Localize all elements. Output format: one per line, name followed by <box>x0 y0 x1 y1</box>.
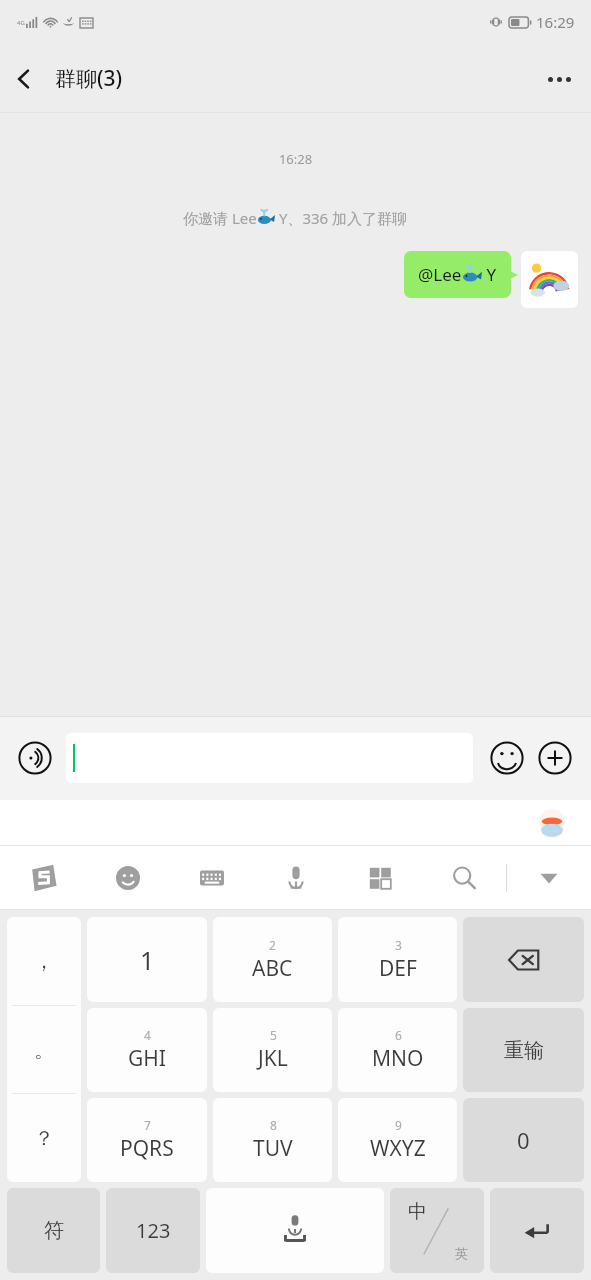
button[interactable]: 6 <box>338 1008 457 1092</box>
button[interactable]: Sogou input <box>0 846 85 910</box>
button[interactable]: Space <box>206 1188 384 1273</box>
button[interactable]: 1 <box>87 917 207 1002</box>
button[interactable]: @Lee <box>404 251 511 298</box>
staticText: 6 <box>395 1027 402 1043</box>
staticText: 4 <box>144 1027 151 1043</box>
staticText: WXYZ <box>370 1134 426 1163</box>
button[interactable]: ？ <box>7 1094 81 1182</box>
button[interactable]: ， <box>7 917 81 1006</box>
staticText: 中 <box>408 1200 427 1224</box>
button[interactable]: Back <box>0 55 48 103</box>
button[interactable]: Voice <box>254 846 338 910</box>
staticText: GHI <box>128 1044 166 1073</box>
button[interactable]: 4 <box>87 1008 207 1092</box>
staticText: 0 <box>517 1125 530 1155</box>
button[interactable]: Emoticons <box>85 846 170 910</box>
button[interactable]: Avatar <box>521 251 578 308</box>
button[interactable]: Collapse keyboard <box>507 846 591 910</box>
staticText: ， <box>34 949 54 974</box>
button[interactable]: 7 <box>87 1098 207 1182</box>
button[interactable]: Re-enter <box>463 1008 584 1092</box>
button[interactable]: Backspace <box>463 917 584 1002</box>
staticText: 5 <box>270 1027 277 1043</box>
staticText: 3 <box>395 937 402 953</box>
button[interactable]: Search <box>422 846 506 910</box>
staticText: 英 <box>455 1245 468 1261</box>
button[interactable] <box>66 733 473 783</box>
button[interactable]: Chinese English toggle <box>390 1188 484 1273</box>
button[interactable]: 8 <box>213 1098 332 1182</box>
button[interactable]: Voice input <box>14 737 56 779</box>
staticText: JKL <box>258 1044 288 1073</box>
button[interactable]: 9 <box>338 1098 457 1182</box>
button[interactable]: 2 <box>213 917 332 1002</box>
button[interactable]: 123 <box>106 1188 200 1273</box>
button[interactable]: 符 <box>7 1188 100 1273</box>
button[interactable]: More options <box>535 55 583 103</box>
staticText: MNO <box>372 1044 424 1073</box>
staticText: 1 <box>140 943 155 977</box>
staticText: 2 <box>269 937 276 953</box>
button[interactable]: More functions <box>533 736 577 780</box>
button[interactable]: 3 <box>338 917 457 1002</box>
staticText: Y、336 加入了群聊 <box>275 208 408 228</box>
staticText: 群聊(3) <box>55 64 123 93</box>
staticText: 7 <box>144 1117 151 1133</box>
staticText: 123 <box>136 1217 171 1244</box>
button[interactable]: Emoji <box>485 736 529 780</box>
staticText: PQRS <box>120 1134 174 1163</box>
button[interactable]: 。 <box>7 1006 81 1094</box>
staticText: 16:28 <box>0 150 591 168</box>
button[interactable]: 0 <box>463 1098 584 1182</box>
button[interactable]: Keyboard layout <box>170 846 254 910</box>
staticText: Y <box>482 263 497 286</box>
staticText: 。 <box>34 1038 54 1063</box>
staticText: 8 <box>270 1117 277 1133</box>
staticText: 4G <box>17 19 25 27</box>
staticText: 重输 <box>504 1038 544 1063</box>
button[interactable]: 5 <box>213 1008 332 1092</box>
button[interactable]: Apps <box>338 846 422 910</box>
staticText: @Lee <box>418 263 462 286</box>
staticText: TUV <box>253 1134 293 1163</box>
staticText: DEF <box>379 954 417 983</box>
staticText: ABC <box>252 954 293 983</box>
staticText: 你邀请 Lee <box>183 208 257 228</box>
staticText: ？ <box>34 1126 54 1151</box>
button[interactable]: Sticker suggestion <box>535 806 569 840</box>
button[interactable]: Enter <box>490 1188 584 1273</box>
staticText: 符 <box>44 1218 64 1243</box>
staticText: 9 <box>395 1117 402 1133</box>
staticText: 16:29 <box>536 12 575 32</box>
